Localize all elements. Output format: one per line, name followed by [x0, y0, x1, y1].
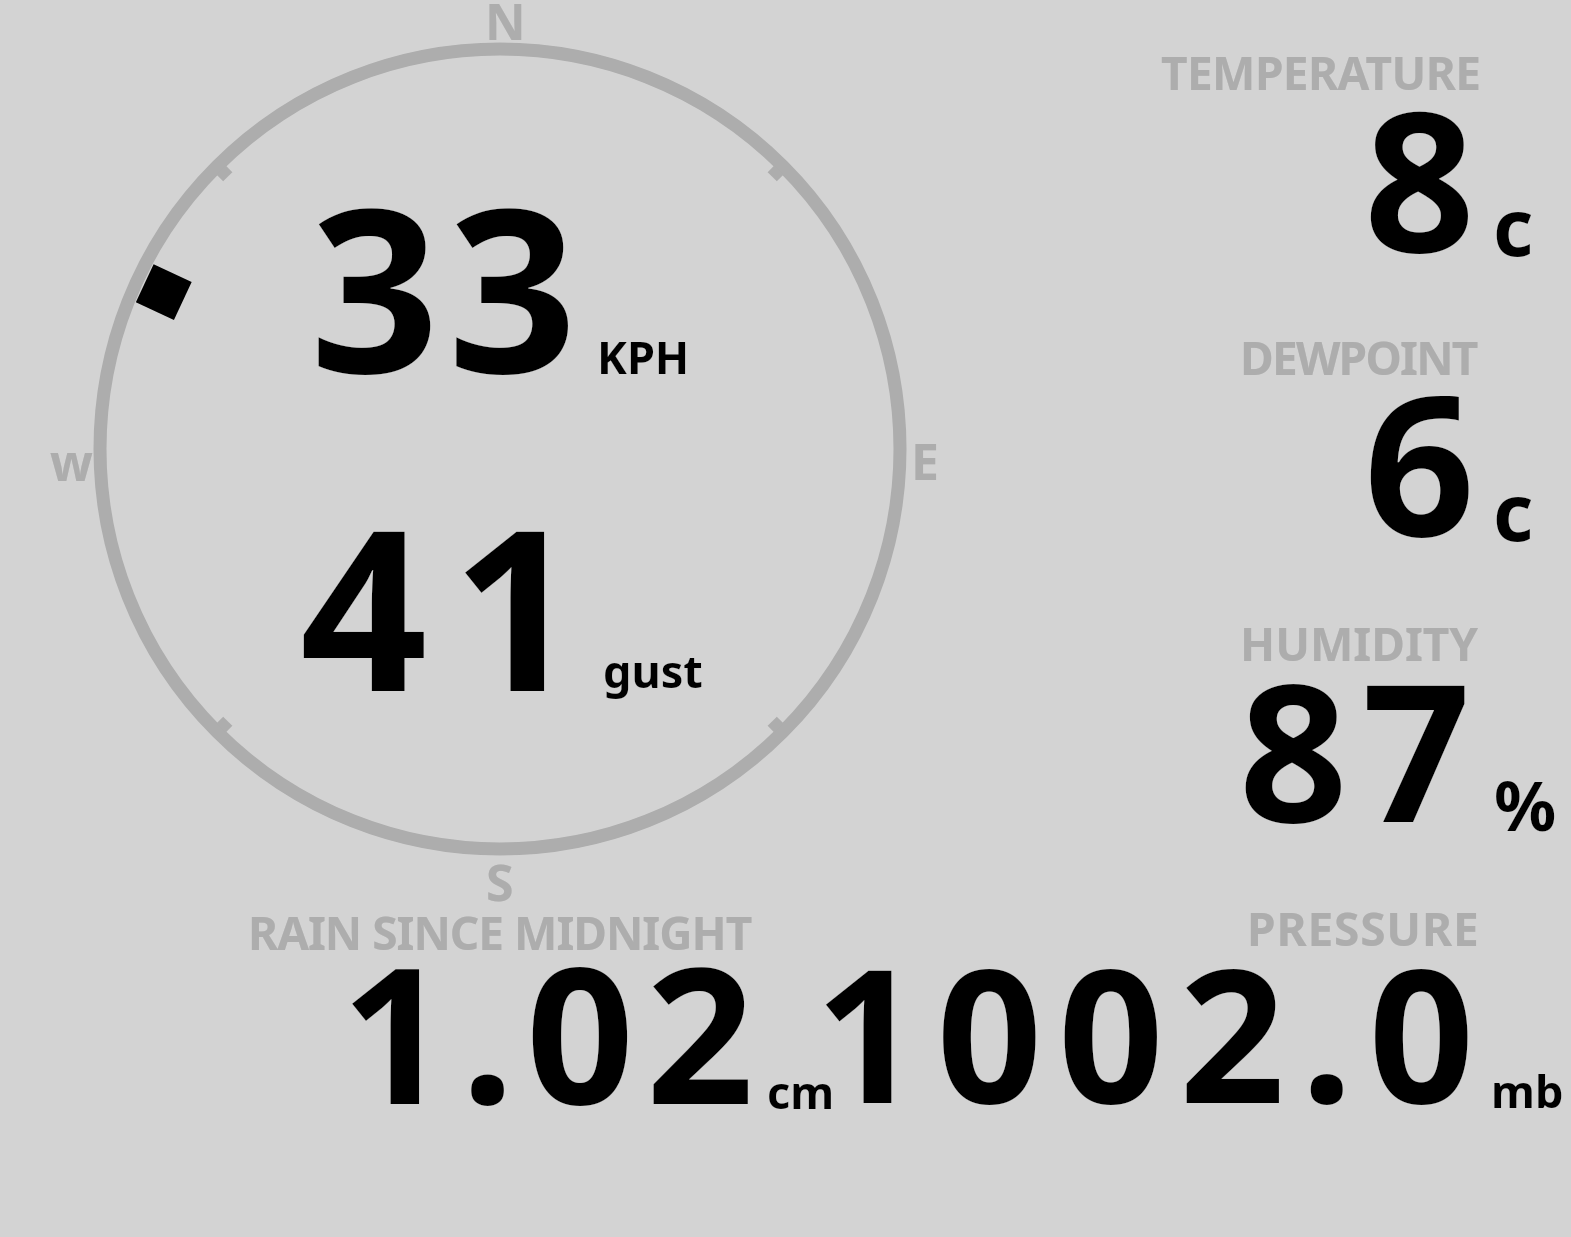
staticText: S [486, 848, 514, 916]
button[interactable]: Wind 33 KPH, gusting 41, direction west … [95, 44, 905, 854]
staticText: gust [603, 640, 703, 701]
staticText: w [50, 428, 93, 496]
staticText: mb [1491, 1060, 1564, 1121]
staticText: 1002.0 [815, 905, 1490, 1157]
staticText: N [485, 0, 526, 55]
staticText: E [911, 427, 939, 495]
staticText: 6 [1364, 329, 1475, 593]
staticText: 87 [1239, 619, 1485, 878]
staticText: 33 [310, 131, 586, 439]
staticText: PRESSURE [1247, 897, 1480, 960]
staticText: TEMPERATURE [1161, 41, 1481, 104]
staticText: % [1494, 757, 1557, 851]
button[interactable]: Dewpoint 6 degrees Celsius [1110, 324, 1565, 554]
staticText: 41 [300, 453, 604, 757]
button[interactable]: Pressure 1002.0 mb [860, 895, 1570, 1120]
button[interactable]: Rain since midnight 1.02 cm [230, 900, 850, 1120]
staticText: cm [767, 1061, 835, 1122]
staticText: 8 [1364, 45, 1475, 309]
staticText: HUMIDITY [1240, 612, 1479, 675]
button[interactable]: Humidity 87 percent [1110, 610, 1565, 840]
staticText: c [1493, 458, 1534, 564]
button[interactable]: Temperature 8 degrees Celsius [1110, 40, 1565, 270]
staticText: DEWPOINT [1240, 326, 1477, 389]
staticText: 1.02 [341, 902, 767, 1159]
staticText: KPH [597, 326, 690, 387]
staticText: c [1493, 173, 1534, 279]
staticText: RAIN SINCE MIDNIGHT [248, 901, 752, 964]
